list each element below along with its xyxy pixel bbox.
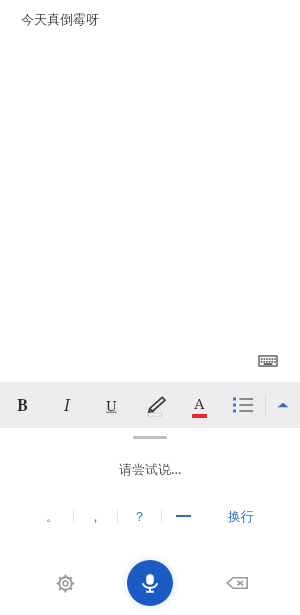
button[interactable]: Highlight: [133, 382, 177, 428]
staticText: ？: [133, 508, 146, 524]
staticText: B: [17, 394, 28, 416]
button[interactable]: Switch to keyboard: [250, 343, 286, 379]
button[interactable]: Settings: [46, 564, 84, 602]
button[interactable]: Collapse toolbar: [266, 382, 300, 428]
button[interactable]: ，: [74, 500, 117, 532]
staticText: 请尝试说...: [119, 460, 182, 478]
button[interactable]: Italic: [45, 382, 89, 428]
staticText: 今天真倒霉呀: [21, 11, 99, 27]
staticText: I: [64, 394, 70, 416]
button[interactable]: Bold: [0, 382, 45, 428]
staticText: A: [194, 393, 205, 413]
staticText: 换行: [228, 508, 254, 524]
button[interactable]: 。: [31, 500, 73, 532]
staticText: U: [106, 395, 117, 415]
button[interactable]: Underline: [89, 382, 133, 428]
button[interactable]: Backspace: [218, 564, 256, 602]
staticText: 。: [46, 508, 59, 524]
staticText: ，: [89, 508, 102, 524]
button[interactable]: Text color: [177, 382, 221, 428]
button[interactable]: Space: [162, 500, 205, 532]
button[interactable]: ？: [118, 500, 161, 532]
button[interactable]: 换行: [213, 500, 269, 532]
button[interactable]: Bulleted list: [221, 382, 265, 428]
button[interactable]: Voice input: [127, 560, 173, 606]
